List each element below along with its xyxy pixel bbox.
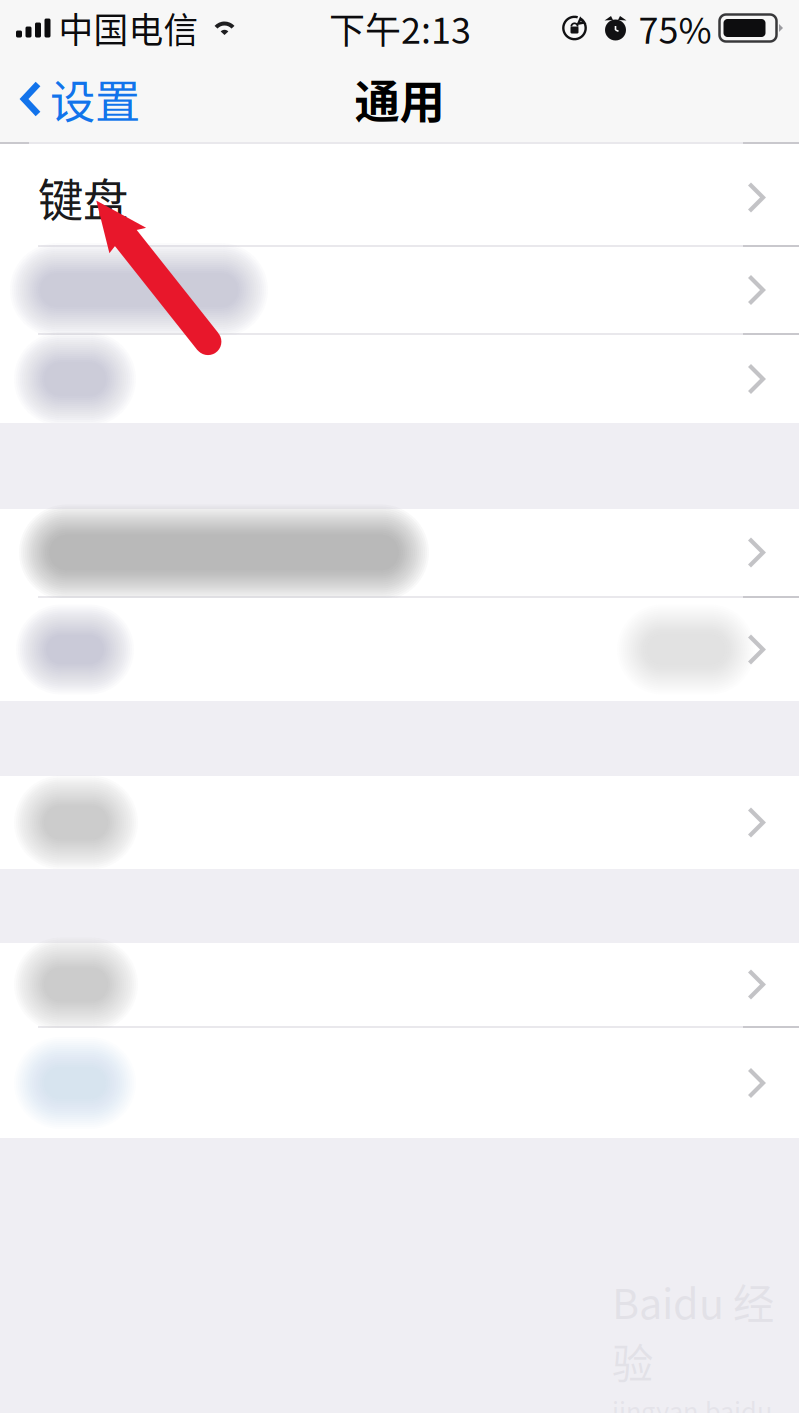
button[interactable]: 键盘 [0,150,799,245]
button[interactable] [0,776,799,869]
button[interactable] [0,1028,799,1138]
staticText: 键盘 [38,165,128,230]
staticText: 下午2:13 [329,2,471,54]
button[interactable] [0,335,799,423]
staticText: 设置 [50,66,140,132]
staticText: 中国电信 [58,3,198,53]
button[interactable] [0,509,799,596]
button[interactable] [0,598,799,701]
staticText: 75% [638,2,711,54]
staticText: jingyan.baidu.com [612,1392,779,1413]
staticText: Baidu 经验 [612,1271,774,1391]
staticText: 通用 [354,66,444,132]
button[interactable]: 设置 [0,52,140,146]
button[interactable] [0,943,799,1026]
button[interactable] [0,247,799,333]
